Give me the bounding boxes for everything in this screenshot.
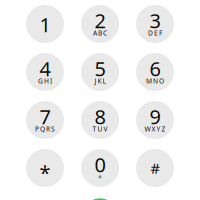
staticText: M N O [146, 77, 164, 85]
button[interactable]: Call [83, 198, 117, 200]
staticText: P Q R S [35, 125, 55, 133]
button[interactable]: 9 [136, 101, 174, 139]
button[interactable]: 8 [81, 101, 119, 139]
staticText: 9 [149, 103, 160, 130]
staticText: 4 [39, 55, 50, 82]
button[interactable]: 7 [26, 101, 64, 139]
staticText: 5 [94, 55, 105, 82]
staticText: W X Y Z [144, 125, 165, 133]
staticText: D E F [148, 29, 162, 37]
button[interactable]: 5 [81, 53, 119, 91]
button[interactable]: 3 [136, 5, 174, 43]
button[interactable]: # [136, 149, 174, 187]
staticText: 1 [39, 11, 50, 38]
button[interactable]: * [26, 149, 64, 187]
staticText: 3 [149, 7, 160, 34]
staticText: A B C [93, 29, 107, 37]
staticText: 7 [39, 103, 50, 130]
button[interactable]: 0 [81, 149, 119, 187]
staticText: 6 [149, 55, 160, 82]
staticText: + [98, 173, 102, 181]
button[interactable]: 2 [81, 5, 119, 43]
staticText: 2 [94, 7, 105, 34]
staticText: * [39, 159, 50, 186]
staticText: T U V [92, 125, 107, 133]
button[interactable]: 4 [26, 53, 64, 91]
staticText: 0 [94, 151, 105, 178]
staticText: # [150, 158, 159, 178]
button[interactable]: 6 [136, 53, 174, 91]
staticText: J K L [94, 77, 105, 85]
staticText: 8 [94, 103, 105, 130]
button[interactable]: 1 [26, 5, 64, 43]
staticText: G H I [38, 77, 52, 85]
